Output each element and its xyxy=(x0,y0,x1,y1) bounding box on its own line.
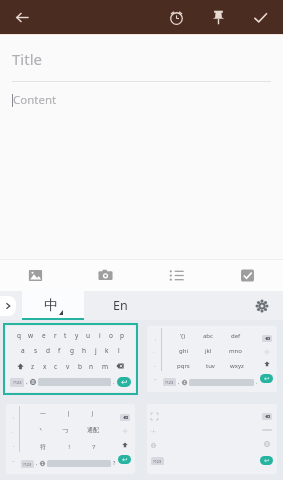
staticText: jkl xyxy=(205,347,212,355)
staticText: def xyxy=(231,332,241,340)
staticText: pqrs xyxy=(177,362,190,370)
staticText: tuv xyxy=(206,362,215,370)
button[interactable]: Back xyxy=(6,1,38,33)
button[interactable]: Reminder xyxy=(161,2,191,32)
staticText: . xyxy=(113,378,115,386)
button[interactable]: En xyxy=(84,291,156,320)
button[interactable]: Keyboard settings xyxy=(251,295,273,317)
staticText: , xyxy=(36,460,38,467)
staticText: mno xyxy=(229,347,242,355)
staticText: 通配 xyxy=(87,426,99,434)
staticText: v xyxy=(66,362,70,371)
button[interactable]: Insert image xyxy=(0,260,70,291)
staticText: e xyxy=(42,331,46,340)
staticText: ? xyxy=(113,460,116,467)
staticText: l xyxy=(118,346,120,355)
staticText: o xyxy=(109,331,113,340)
staticText: s xyxy=(34,346,38,355)
staticText: u xyxy=(86,331,91,340)
button[interactable]: Checklist xyxy=(141,260,212,291)
staticText: k xyxy=(105,346,109,355)
staticText: d xyxy=(46,346,50,355)
staticText: ghi xyxy=(179,347,188,355)
staticText: q xyxy=(17,331,21,340)
staticText: ~ xyxy=(12,458,15,464)
button[interactable]: Done xyxy=(245,2,275,32)
staticText: t xyxy=(64,331,67,340)
staticText: '() xyxy=(180,332,185,340)
staticText: 丨 xyxy=(66,410,72,418)
staticText: 一 xyxy=(40,410,46,418)
staticText: 。 xyxy=(153,349,158,355)
button[interactable]: Title xyxy=(12,49,271,69)
staticText: z xyxy=(31,362,35,371)
staticText: x xyxy=(43,362,47,371)
staticText: ， xyxy=(11,414,16,420)
staticText: ?123 xyxy=(23,462,32,467)
button[interactable]: Pin xyxy=(203,2,233,32)
staticText: r xyxy=(54,331,57,340)
staticText: ！ xyxy=(66,443,72,451)
staticText: 丿 xyxy=(91,410,97,418)
staticText: ?123 xyxy=(13,380,22,385)
staticText: 符 xyxy=(40,443,46,451)
staticText: 中 xyxy=(44,297,58,315)
staticText: wxyz xyxy=(230,362,244,370)
staticText: j xyxy=(95,346,97,355)
button[interactable]: ， xyxy=(6,404,135,474)
button[interactable]: Content xyxy=(12,92,271,108)
button[interactable]: Take photo xyxy=(70,260,141,291)
staticText: b xyxy=(78,362,82,371)
button[interactable]: Checkbox xyxy=(212,260,283,291)
button[interactable]: ?123 xyxy=(147,404,277,474)
staticText: , xyxy=(26,378,28,386)
staticText: f xyxy=(58,346,61,355)
staticText: - xyxy=(154,363,156,369)
staticText: ~ xyxy=(154,376,157,382)
button[interactable]: Expand xyxy=(0,296,16,316)
staticText: c xyxy=(54,362,58,371)
staticText: h xyxy=(82,346,87,355)
button[interactable]: ， xyxy=(147,326,277,392)
staticText: w xyxy=(28,331,34,340)
button[interactable]: 中 xyxy=(22,291,84,320)
staticText: Title xyxy=(12,49,42,69)
staticText: 。 xyxy=(11,429,16,435)
staticText: g xyxy=(70,346,74,355)
staticText: m xyxy=(102,362,109,371)
staticText: , xyxy=(178,379,180,386)
staticText: 丶 xyxy=(38,426,44,434)
staticText: ?123 xyxy=(165,380,174,385)
button[interactable]: q xyxy=(6,326,135,392)
staticText: p xyxy=(120,331,124,340)
staticText: . xyxy=(256,379,258,386)
staticText: n xyxy=(89,362,94,371)
staticText: Content xyxy=(13,92,57,108)
staticText: abc xyxy=(203,332,213,340)
staticText: a xyxy=(21,346,25,355)
staticText: ?123 xyxy=(153,459,162,464)
staticText: - xyxy=(13,443,15,449)
staticText: i xyxy=(99,331,101,340)
staticText: En xyxy=(113,297,128,314)
staticText: ， xyxy=(153,336,158,342)
staticText: ？ xyxy=(91,443,97,451)
staticText: 𠃌 xyxy=(62,427,69,434)
staticText: y xyxy=(75,331,79,340)
